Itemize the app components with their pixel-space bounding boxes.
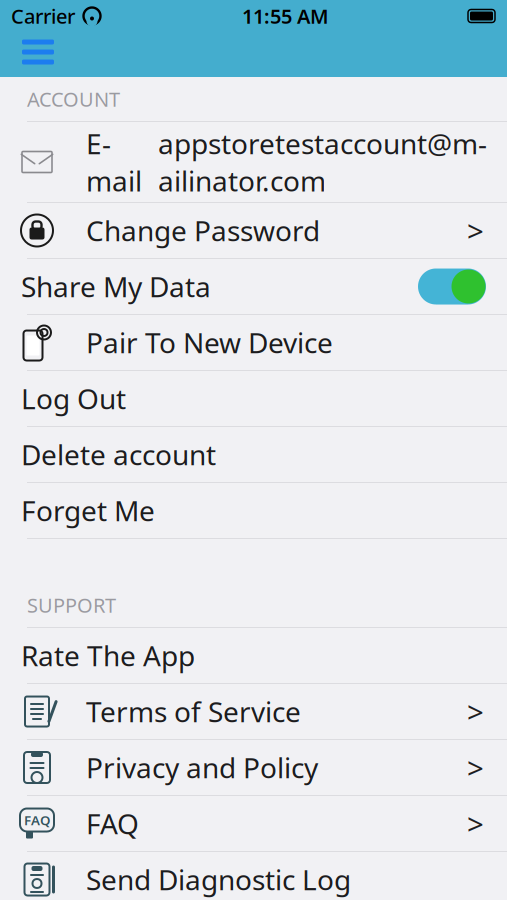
staticText: FAQ bbox=[86, 805, 139, 842]
button[interactable]: Send Diagnostic Log bbox=[0, 852, 507, 900]
staticText: Share My Data bbox=[21, 268, 211, 305]
staticText: Delete account bbox=[21, 436, 216, 473]
button[interactable]: Pair To New Device bbox=[0, 315, 507, 370]
button[interactable]: FAQ bbox=[0, 796, 507, 851]
button[interactable]: Rate The App bbox=[0, 628, 507, 683]
staticText: 11:55 AM bbox=[242, 3, 329, 29]
staticText: > bbox=[467, 804, 484, 843]
staticText: > bbox=[467, 692, 484, 731]
button[interactable]: Log Out bbox=[0, 371, 507, 426]
staticText: Pair To New Device bbox=[86, 324, 333, 361]
staticText: > bbox=[467, 748, 484, 787]
staticText: Rate The App bbox=[21, 637, 195, 674]
button[interactable]: Terms of Service bbox=[0, 684, 507, 739]
staticText: ACCOUNT bbox=[27, 86, 120, 112]
staticText: Log Out bbox=[21, 380, 126, 417]
staticText: appstoretestaccount@mailinator.com bbox=[158, 125, 487, 199]
staticText: Send Diagnostic Log bbox=[86, 861, 351, 898]
staticText: Change Password bbox=[86, 212, 320, 249]
button[interactable]: Change Password bbox=[0, 203, 507, 258]
button[interactable]: Privacy and Policy bbox=[0, 740, 507, 795]
button[interactable]: E-mail bbox=[0, 122, 507, 202]
button[interactable]: Menu bbox=[12, 29, 64, 75]
staticText: E-mail bbox=[86, 125, 142, 199]
staticText: > bbox=[467, 211, 484, 250]
button[interactable]: Forget Me bbox=[0, 483, 507, 538]
staticText: Terms of Service bbox=[86, 693, 301, 730]
button[interactable]: Share My Data bbox=[0, 259, 507, 314]
staticText: Forget Me bbox=[21, 492, 155, 529]
staticText: FAQ bbox=[24, 811, 50, 829]
button[interactable]: Delete account bbox=[0, 427, 507, 482]
staticText: Carrier bbox=[11, 3, 75, 29]
staticText: SUPPORT bbox=[27, 592, 116, 618]
staticText: Privacy and Policy bbox=[86, 749, 318, 786]
